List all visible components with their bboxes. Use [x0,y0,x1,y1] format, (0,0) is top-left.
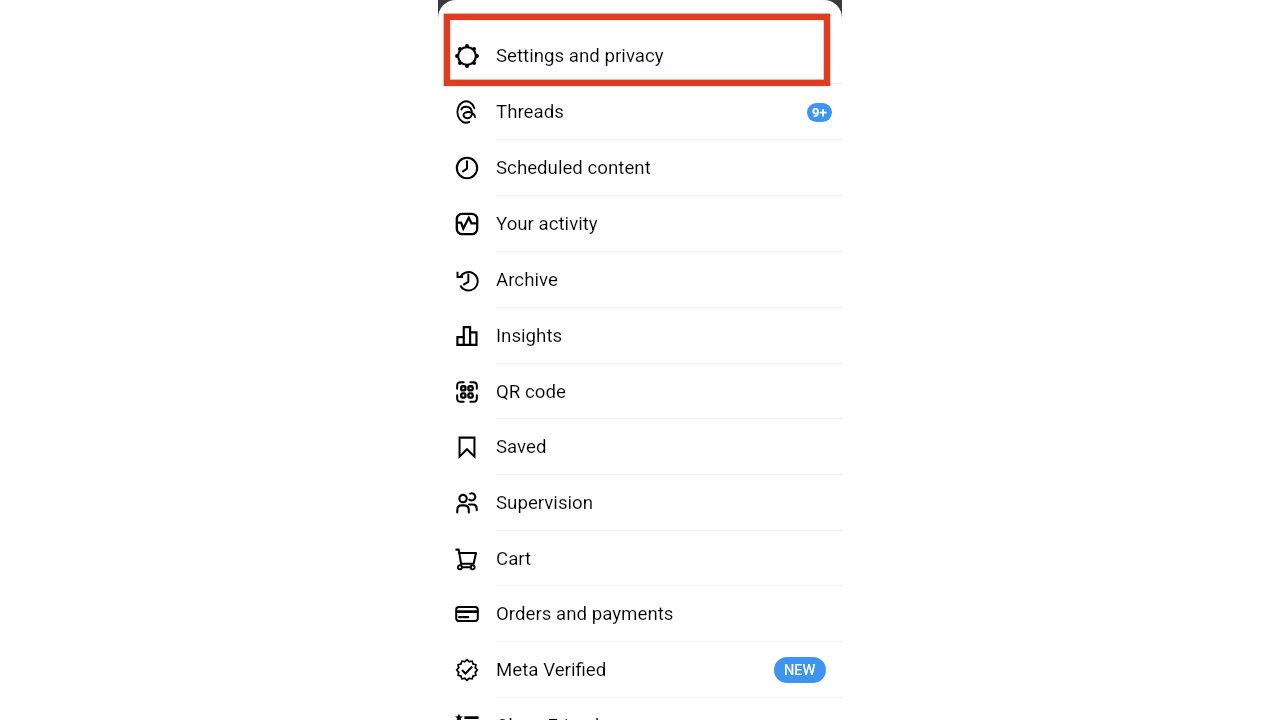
button[interactable]: QR code [438,364,842,419]
staticText: Orders and payments [496,603,674,625]
staticText: Cart [496,548,532,570]
button[interactable]: Scheduled content [438,140,842,196]
button[interactable]: Threads [438,84,842,140]
button[interactable]: Your activity [438,196,842,252]
staticText: Settings and privacy [496,45,664,67]
staticText: Close Friends [496,715,609,720]
staticText: Archive [496,269,558,291]
staticText: QR code [496,381,566,403]
staticText: Threads [496,101,564,123]
button[interactable]: Supervision [438,475,842,531]
button[interactable]: Settings and privacy [438,28,842,84]
button[interactable]: Close Friends [438,698,842,720]
staticText: NEW [784,662,816,679]
staticText: Saved [496,436,547,458]
button[interactable]: Archive [438,252,842,308]
staticText: Insights [496,325,563,347]
button[interactable]: Orders and payments [438,586,842,642]
staticText: 9+ [812,105,827,120]
staticText: Meta Verified [496,659,607,681]
staticText: Supervision [496,492,594,514]
button[interactable]: Cart [438,531,842,586]
button[interactable]: Insights [438,308,842,364]
button[interactable]: Meta Verified [438,642,842,698]
staticText: Scheduled content [496,157,651,179]
button[interactable]: Saved [438,419,842,475]
staticText: Your activity [496,213,598,235]
